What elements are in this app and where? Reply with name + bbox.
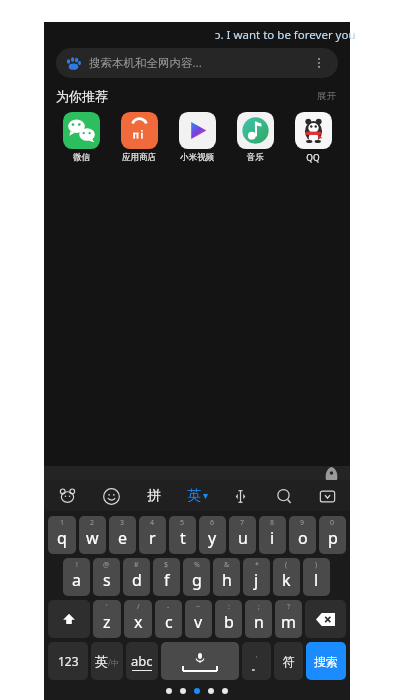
- staticText: x: [134, 611, 143, 633]
- staticText: ~: [196, 602, 201, 612]
- staticText: 3: [120, 518, 125, 528]
- button[interactable]: ?: [275, 600, 302, 638]
- button[interactable]: Search: [271, 483, 297, 509]
- staticText: q: [57, 527, 67, 549]
- button[interactable]: 搜索本机和全网内容...: [56, 48, 338, 78]
- button[interactable]: 音乐: [228, 110, 282, 165]
- staticText: m: [281, 611, 296, 633]
- button[interactable]: 英: [91, 642, 123, 680]
- staticText: ': [106, 602, 108, 612]
- button[interactable]: QQ: [286, 110, 340, 166]
- button[interactable]: Backspace: [305, 600, 346, 638]
- button[interactable]: %: [183, 558, 210, 596]
- button[interactable]: 搜索: [306, 642, 346, 680]
- button[interactable]: :: [215, 600, 242, 638]
- staticText: f: [164, 569, 170, 591]
- staticText: n: [254, 611, 264, 633]
- staticText: *: [255, 560, 259, 570]
- button[interactable]: @: [93, 558, 120, 596]
- button[interactable]: 0: [319, 516, 346, 554]
- staticText: QQ: [306, 152, 320, 164]
- staticText: h: [222, 569, 232, 591]
- staticText: 拼: [147, 487, 161, 505]
- button[interactable]: ;: [245, 600, 272, 638]
- button[interactable]: 123: [48, 642, 88, 680]
- staticText: 2: [90, 518, 95, 528]
- button[interactable]: Hide keyboard: [314, 483, 340, 509]
- staticText: ，: [253, 650, 260, 659]
- staticText: c: [165, 611, 173, 633]
- staticText: @: [103, 560, 110, 570]
- staticText: z: [103, 611, 111, 633]
- staticText: v: [194, 611, 203, 633]
- button[interactable]: 符: [274, 642, 303, 680]
- button[interactable]: Baidu input: [54, 483, 80, 509]
- button[interactable]: (: [273, 558, 300, 596]
- staticText: &: [224, 560, 230, 570]
- button[interactable]: Shift: [48, 600, 90, 638]
- staticText: w: [86, 527, 99, 549]
- staticText: 应用商店: [122, 152, 156, 163]
- button[interactable]: More options: [310, 54, 328, 72]
- button[interactable]: ~: [185, 600, 212, 638]
- staticText: 。: [251, 659, 262, 673]
- button[interactable]: 小米视频: [170, 110, 224, 165]
- button[interactable]: *: [243, 558, 270, 596]
- staticText: %: [194, 560, 200, 570]
- button[interactable]: abc: [126, 642, 158, 680]
- button[interactable]: 2: [79, 516, 106, 554]
- button[interactable]: 8: [259, 516, 286, 554]
- button[interactable]: Emoji: [98, 483, 124, 509]
- button[interactable]: /: [124, 600, 152, 638]
- button[interactable]: 4: [139, 516, 166, 554]
- staticText: ɔ. I want to be forever you: [215, 27, 356, 43]
- staticText: e: [118, 527, 128, 549]
- staticText: g: [192, 569, 202, 591]
- button[interactable]: ): [303, 558, 330, 596]
- staticText: ?: [287, 602, 291, 612]
- button[interactable]: &: [213, 558, 240, 596]
- staticText: s: [103, 569, 111, 591]
- staticText: 1: [60, 518, 65, 528]
- staticText: b: [224, 611, 234, 633]
- staticText: #: [134, 560, 139, 570]
- staticText: $: [164, 560, 169, 570]
- button[interactable]: 英: [185, 483, 210, 509]
- button[interactable]: Pinyin mode: [141, 483, 167, 509]
- button[interactable]: 9: [289, 516, 316, 554]
- button[interactable]: #: [123, 558, 150, 596]
- staticText: 9: [300, 518, 305, 528]
- staticText: abc: [131, 652, 153, 670]
- button[interactable]: 应用商店: [112, 110, 166, 165]
- staticText: /中: [108, 657, 119, 668]
- staticText: :: [228, 602, 230, 612]
- staticText: 4: [150, 518, 155, 528]
- staticText: p: [328, 527, 338, 549]
- button[interactable]: ': [93, 600, 121, 638]
- button[interactable]: Cursor move: [227, 483, 253, 509]
- button[interactable]: 6: [199, 516, 226, 554]
- button[interactable]: $: [153, 558, 180, 596]
- button[interactable]: Space, voice input: [161, 642, 239, 680]
- button[interactable]: 3: [109, 516, 136, 554]
- staticText: 搜索: [314, 654, 338, 669]
- staticText: 0: [330, 518, 335, 528]
- staticText: 英: [95, 653, 108, 669]
- button[interactable]: 7: [229, 516, 256, 554]
- staticText: l: [314, 569, 319, 591]
- button[interactable]: Assistant: [325, 467, 338, 480]
- staticText: ): [315, 560, 318, 570]
- staticText: !: [76, 560, 78, 570]
- button[interactable]: 1: [48, 516, 76, 554]
- button[interactable]: !: [63, 558, 90, 596]
- staticText: u: [238, 527, 248, 549]
- button[interactable]: 5: [169, 516, 196, 554]
- staticText: 6: [210, 518, 215, 528]
- button[interactable]: 微信: [54, 110, 108, 165]
- staticText: 音乐: [247, 152, 264, 163]
- button[interactable]: 展开: [315, 88, 338, 104]
- button[interactable]: -: [155, 600, 182, 638]
- staticText: 微信: [73, 152, 90, 163]
- button[interactable]: ，: [242, 642, 271, 680]
- staticText: a: [72, 569, 81, 591]
